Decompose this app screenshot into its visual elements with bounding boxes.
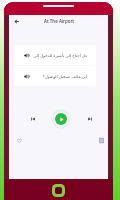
button[interactable]: Notes [96,135,106,145]
staticText: هل أحتاج إلى تأشيرة للدخول إلى البلد؟ [29,53,87,58]
button[interactable]: Previous [29,115,37,123]
button[interactable]: Favorite [14,135,24,145]
button[interactable]: Back [11,17,21,25]
button[interactable]: هل أحتاج إلى تأشيرة للدخول إلى البلد؟ [14,45,96,65]
staticText: أين مكتب تسجيل الوصول؟ [42,74,87,79]
button[interactable]: أين مكتب تسجيل الوصول؟ [14,66,96,86]
button[interactable]: Next [86,115,94,123]
staticText: At The Airport [44,18,75,24]
button[interactable]: Play [55,113,67,125]
button[interactable]: Home [55,187,62,194]
